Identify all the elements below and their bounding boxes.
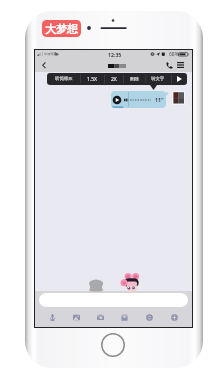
staticText: 听筒播放: [55, 76, 73, 82]
button[interactable]: More: [168, 311, 180, 323]
button[interactable]: Call: [163, 59, 175, 71]
button[interactable]: Back: [37, 58, 51, 72]
staticText: 11'': [155, 96, 164, 103]
button[interactable]: Camera: [94, 311, 106, 323]
button[interactable]: 听筒播放: [47, 73, 80, 85]
button[interactable]: Emoji: [143, 311, 155, 323]
staticText: 大梦想: [45, 22, 78, 36]
button[interactable]: 转文字: [145, 73, 170, 85]
button[interactable]: [39, 293, 188, 307]
button[interactable]: Menu: [174, 59, 186, 71]
button[interactable]: Voice: [46, 311, 58, 323]
staticText: 转文字: [151, 76, 165, 82]
button[interactable]: Play: [171, 73, 187, 85]
staticText: 删除: [130, 76, 139, 82]
staticText: 中国联通: [44, 52, 57, 56]
button[interactable]: 2X: [104, 73, 123, 85]
button[interactable]: 删除: [123, 73, 145, 85]
button[interactable]: 大梦想: [42, 20, 81, 37]
staticText: 68%: [169, 51, 179, 58]
button[interactable]: 1.5X: [80, 73, 104, 85]
staticText: 12:35: [108, 51, 122, 58]
button[interactable]: Gallery: [70, 311, 82, 323]
button[interactable]: Video: [118, 311, 130, 323]
button[interactable]: Avatar: [172, 91, 185, 105]
staticText: 2X: [111, 76, 117, 83]
staticText: 1.5X: [87, 76, 97, 83]
button[interactable]: 11'': [111, 91, 166, 108]
